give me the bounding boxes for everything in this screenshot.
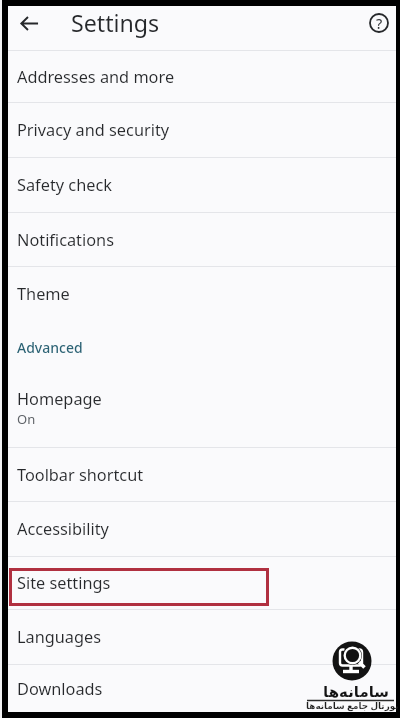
staticText: Homepage — [17, 388, 102, 410]
staticText: Notifications — [17, 229, 114, 251]
staticText: On — [17, 410, 36, 428]
staticText: Downloads — [17, 678, 103, 700]
button[interactable]: Languages — [8, 610, 396, 664]
staticText: Theme — [17, 283, 70, 305]
button[interactable]: Help — [364, 8, 394, 38]
staticText: Safety check — [17, 174, 112, 196]
staticText: Toolbar shortcut — [17, 464, 144, 486]
staticText: سامانه‌ها — [323, 683, 390, 700]
button[interactable]: Addresses and more — [8, 51, 396, 102]
staticText: Accessibility — [17, 518, 109, 540]
staticText: Advanced — [17, 338, 83, 357]
staticText: Privacy and security — [17, 119, 170, 141]
button[interactable]: Toolbar shortcut — [8, 448, 396, 501]
button[interactable]: Privacy and security — [8, 103, 396, 157]
staticText: Addresses and more — [17, 66, 175, 88]
staticText: ? — [376, 14, 383, 33]
staticText: Site settings — [17, 572, 111, 594]
button[interactable]: Downloads — [8, 665, 396, 712]
button[interactable]: Notifications — [8, 213, 396, 266]
button[interactable]: Back — [13, 7, 45, 39]
staticText: Settings — [71, 7, 160, 39]
button[interactable]: Homepage — [8, 374, 396, 447]
button[interactable]: Site settings — [8, 557, 396, 609]
staticText: Languages — [17, 626, 102, 648]
button[interactable]: Accessibility — [8, 502, 396, 556]
button[interactable]: Theme — [8, 267, 396, 320]
staticText: پورتال جامع سامانه‌ها — [306, 700, 399, 712]
button[interactable]: Safety check — [8, 158, 396, 212]
